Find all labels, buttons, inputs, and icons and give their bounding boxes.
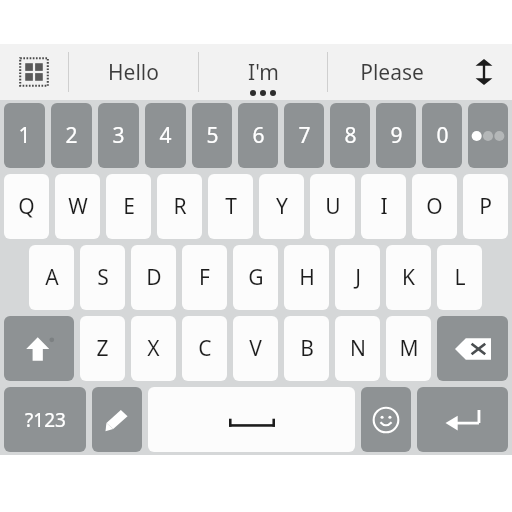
button[interactable]: I'm	[199, 44, 327, 100]
staticText: Z	[96, 334, 109, 363]
staticText: 0	[436, 121, 449, 150]
staticText: 7	[298, 121, 311, 150]
staticText: 8	[344, 121, 357, 150]
button[interactable]: Please	[328, 44, 456, 100]
button[interactable]: S	[80, 245, 125, 310]
button[interactable]: Backspace	[437, 316, 508, 381]
button[interactable]: W	[55, 174, 100, 239]
staticText: I'm	[248, 58, 279, 87]
button[interactable]: H	[284, 245, 329, 310]
staticText: 4	[159, 121, 172, 150]
button[interactable]: ?123	[4, 387, 86, 452]
staticText: F	[199, 263, 210, 292]
button[interactable]: Emoji	[361, 387, 411, 452]
button[interactable]: U	[310, 174, 355, 239]
staticText: T	[225, 192, 237, 221]
staticText: X	[147, 334, 160, 363]
staticText: 1	[18, 121, 31, 150]
staticText: ?123	[25, 407, 66, 433]
button[interactable]: F	[182, 245, 227, 310]
button[interactable]: C	[182, 316, 227, 381]
button[interactable]: J	[335, 245, 380, 310]
button[interactable]: 2	[51, 103, 92, 168]
button[interactable]: I	[361, 174, 406, 239]
button[interactable]: M	[386, 316, 431, 381]
button[interactable]: X	[131, 316, 176, 381]
staticText: H	[299, 263, 315, 292]
staticText: 3	[112, 121, 125, 150]
staticText: G	[248, 263, 264, 292]
button[interactable]: 4	[145, 103, 186, 168]
button[interactable]: Z	[80, 316, 125, 381]
staticText: P	[479, 192, 492, 221]
button[interactable]: B	[284, 316, 329, 381]
staticText: M	[399, 334, 419, 363]
staticText: A	[45, 263, 59, 292]
button[interactable]: 8	[330, 103, 370, 168]
button[interactable]: T	[208, 174, 253, 239]
button[interactable]: 1	[4, 103, 45, 168]
button[interactable]: O	[412, 174, 457, 239]
button[interactable]: Space	[148, 387, 355, 452]
staticText: 9	[390, 121, 403, 150]
button[interactable]: N	[335, 316, 380, 381]
staticText: R	[173, 192, 187, 221]
button[interactable]: More symbols	[468, 103, 508, 168]
staticText: Q	[18, 192, 35, 221]
staticText: Please	[360, 58, 424, 87]
staticText: C	[198, 334, 212, 363]
button[interactable]: D	[131, 245, 176, 310]
button[interactable]: 3	[98, 103, 139, 168]
staticText: 5	[206, 121, 219, 150]
staticText: S	[97, 263, 109, 292]
button[interactable]: P	[463, 174, 508, 239]
staticText: D	[146, 263, 162, 292]
button[interactable]: Y	[259, 174, 304, 239]
staticText: O	[426, 192, 443, 221]
staticText: Y	[276, 192, 288, 221]
staticText: W	[68, 192, 88, 221]
staticText: N	[350, 334, 366, 363]
staticText: U	[325, 192, 341, 221]
button[interactable]: G	[233, 245, 278, 310]
button[interactable]: E	[106, 174, 151, 239]
button[interactable]: 5	[192, 103, 232, 168]
staticText: E	[123, 192, 135, 221]
button[interactable]: R	[157, 174, 202, 239]
button[interactable]: V	[233, 316, 278, 381]
button[interactable]: K	[386, 245, 431, 310]
staticText: I	[380, 192, 388, 221]
button[interactable]: Expand suggestions	[456, 44, 512, 100]
button[interactable]: Enter	[417, 387, 508, 452]
staticText: J	[355, 263, 361, 292]
button[interactable]: Hello	[69, 44, 198, 100]
button[interactable]: 9	[376, 103, 416, 168]
button[interactable]: 0	[422, 103, 462, 168]
button[interactable]: Q	[4, 174, 49, 239]
button[interactable]: Handwriting	[92, 387, 142, 452]
staticText: L	[454, 263, 466, 292]
staticText: 6	[252, 121, 265, 150]
button[interactable]: 7	[284, 103, 324, 168]
staticText: Hello	[108, 58, 159, 87]
button[interactable]: L	[437, 245, 482, 310]
staticText: B	[300, 334, 314, 363]
button[interactable]: A	[29, 245, 74, 310]
staticText: K	[402, 263, 415, 292]
button[interactable]: Keyboard layout	[0, 44, 68, 100]
button[interactable]: Shift	[4, 316, 74, 381]
staticText: V	[249, 334, 262, 363]
staticText: 2	[65, 121, 78, 150]
button[interactable]: 6	[238, 103, 278, 168]
